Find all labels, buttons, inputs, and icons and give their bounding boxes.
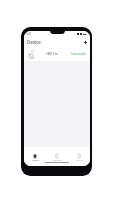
staticText: Device [27, 39, 41, 45]
staticText: Device [32, 159, 39, 162]
staticText: Profile [76, 159, 83, 162]
staticText: Discover [53, 159, 62, 162]
staticText: SM3 Pro [46, 52, 58, 56]
button[interactable]: Add device [82, 39, 88, 45]
button[interactable]: Discover [46, 153, 68, 162]
button[interactable]: Profile [68, 153, 90, 162]
button[interactable]: Device [24, 153, 46, 162]
button[interactable]: SM3 Pro [24, 47, 90, 61]
staticText: 9:41 [26, 32, 32, 36]
staticText: Connected [71, 52, 86, 56]
